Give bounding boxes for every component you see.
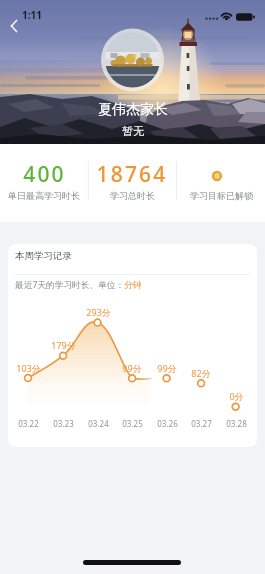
- staticText: 179分: [51, 339, 76, 351]
- staticText: 学习总时长: [110, 190, 155, 201]
- staticText: 103分: [16, 362, 41, 374]
- staticText: 暂无: [122, 124, 144, 138]
- button[interactable]: 本周学习记录: [8, 244, 257, 447]
- staticText: 03.22: [18, 418, 39, 429]
- staticText: 1:11: [22, 8, 42, 22]
- button[interactable]: 18764: [72, 160, 192, 189]
- staticText: 99分: [157, 362, 177, 374]
- staticText: 99分: [122, 362, 142, 374]
- staticText: 400: [23, 160, 66, 189]
- staticText: 82分: [191, 367, 211, 379]
- button[interactable]: 400: [0, 160, 104, 189]
- staticText: 03.28: [226, 418, 247, 429]
- staticText: 03.24: [88, 418, 109, 429]
- staticText: 单日最高学习时长: [8, 190, 80, 201]
- staticText: 本周学习记录: [15, 250, 72, 262]
- button[interactable]: [4, 14, 30, 40]
- staticText: 夏伟杰家长: [98, 101, 168, 119]
- staticText: 最近7天的学习时长、单位：分钟: [15, 279, 142, 291]
- staticText: 03.27: [191, 418, 212, 429]
- staticText: 03.23: [53, 418, 74, 429]
- staticText: 18764: [96, 160, 168, 189]
- staticText: 0分: [229, 390, 244, 402]
- staticText: 学习目标已解锁: [190, 190, 253, 201]
- staticText: 293分: [86, 306, 111, 318]
- staticText: 03.26: [157, 418, 178, 429]
- staticText: 03.25: [122, 418, 143, 429]
